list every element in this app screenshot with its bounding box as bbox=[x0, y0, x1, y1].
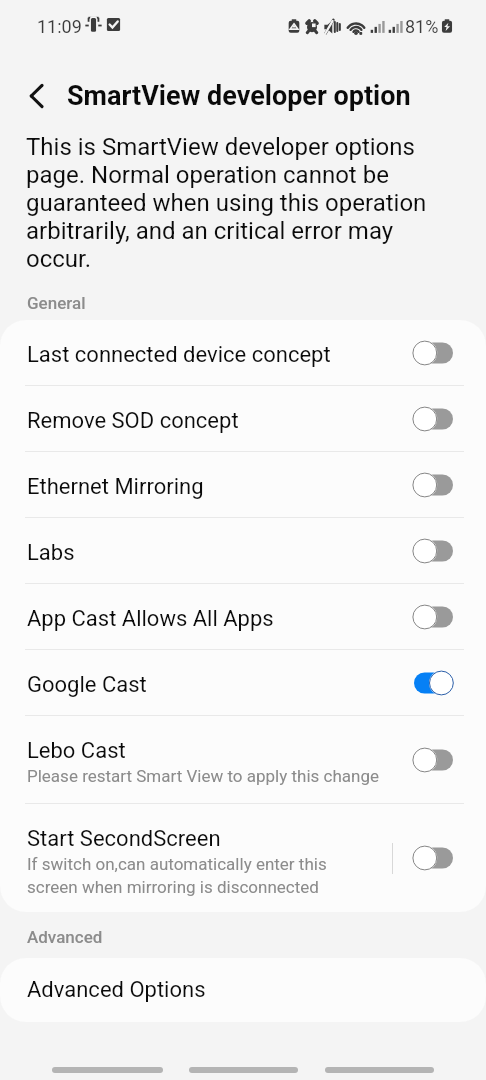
button[interactable]: Recents bbox=[52, 1067, 163, 1073]
button[interactable]: Switch on bbox=[410, 665, 454, 701]
button[interactable]: Last connected device concept bbox=[0, 320, 486, 386]
staticText: If switch on,can automatically enter thi… bbox=[27, 854, 327, 897]
button[interactable]: Back bbox=[325, 1067, 434, 1073]
button[interactable]: Start SecondScreen bbox=[0, 804, 486, 912]
staticText: This is SmartView developer options page… bbox=[26, 133, 428, 273]
staticText: Labs bbox=[27, 540, 75, 566]
button[interactable]: Lebo Cast bbox=[0, 716, 486, 804]
button[interactable]: Labs bbox=[0, 518, 486, 584]
staticText: App Cast Allows All Apps bbox=[27, 606, 274, 632]
button[interactable]: Switch off bbox=[410, 401, 454, 437]
staticText: Please restart Smart View to apply this … bbox=[27, 766, 379, 786]
staticText: Google Cast bbox=[27, 672, 147, 698]
staticText: 11:09 bbox=[37, 16, 82, 37]
staticText: 81% bbox=[405, 16, 439, 37]
button[interactable]: Switch off bbox=[410, 599, 454, 635]
staticText: General bbox=[27, 293, 86, 313]
button[interactable]: Switch off bbox=[410, 742, 454, 778]
button[interactable]: Google Cast bbox=[0, 650, 486, 716]
button[interactable]: Home bbox=[189, 1067, 298, 1073]
button[interactable]: Remove SOD concept bbox=[0, 386, 486, 452]
button[interactable]: Switch off bbox=[410, 533, 454, 569]
button[interactable]: Switch off bbox=[410, 467, 454, 503]
staticText: Lebo Cast bbox=[27, 738, 126, 764]
button[interactable]: Ethernet Mirroring bbox=[0, 452, 486, 518]
button[interactable]: Back bbox=[19, 78, 55, 114]
button[interactable]: Advanced Options bbox=[0, 958, 486, 1022]
staticText: Ethernet Mirroring bbox=[27, 474, 204, 500]
button[interactable]: Switch off bbox=[410, 840, 454, 876]
staticText: Last connected device concept bbox=[27, 342, 331, 368]
staticText: Advanced Options bbox=[27, 977, 206, 1003]
staticText: SmartView developer option bbox=[67, 80, 411, 112]
staticText: Start SecondScreen bbox=[27, 826, 221, 852]
button[interactable]: Switch off bbox=[410, 335, 454, 371]
staticText: Advanced bbox=[27, 927, 103, 947]
staticText: Remove SOD concept bbox=[27, 408, 239, 434]
button[interactable]: App Cast Allows All Apps bbox=[0, 584, 486, 650]
